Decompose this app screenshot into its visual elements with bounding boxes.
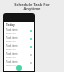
staticText: Task item	[6, 36, 18, 40]
button[interactable]: Task item	[6, 43, 32, 51]
button[interactable]: Task item	[6, 35, 32, 43]
staticText: 09:00 AM	[6, 56, 16, 59]
staticText: Task item	[6, 52, 18, 56]
staticText: Task item	[6, 44, 18, 48]
button[interactable]: Add task	[16, 65, 22, 71]
staticText: 09:00 AM	[6, 40, 16, 43]
button[interactable]: Task item	[6, 51, 32, 59]
button[interactable]: Task item	[6, 59, 32, 67]
staticText: Today	[6, 23, 15, 27]
staticText: Schedule Task For Anytime	[14, 2, 50, 12]
button[interactable]: Task item	[6, 27, 32, 35]
staticText: 09:00 AM	[6, 64, 16, 67]
staticText: 09:00 AM	[6, 32, 16, 35]
staticText: Task item	[6, 28, 18, 32]
staticText: Task item	[6, 60, 18, 64]
staticText: 09:00 AM	[6, 48, 16, 51]
